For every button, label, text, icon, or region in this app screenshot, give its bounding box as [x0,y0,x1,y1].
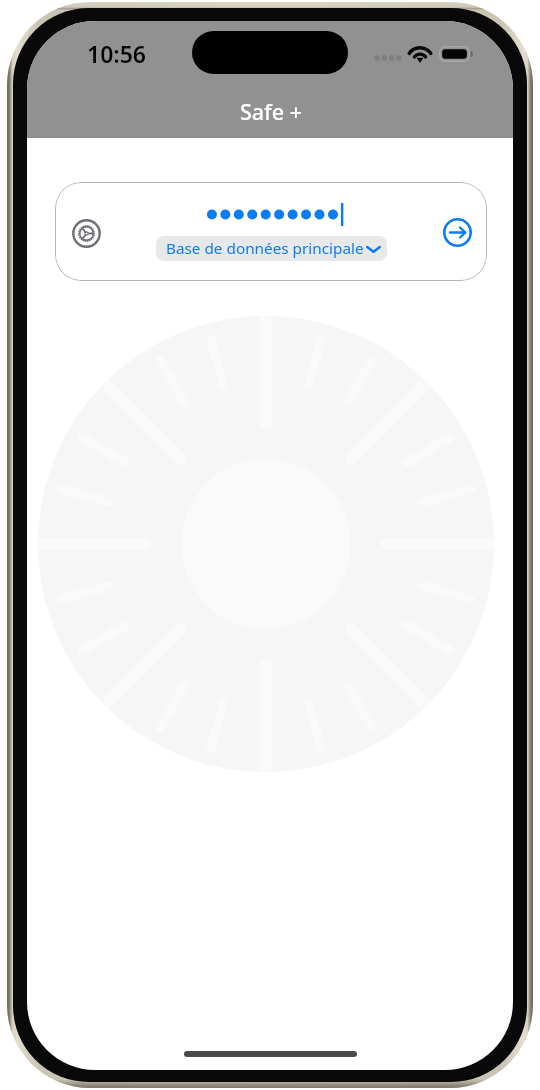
staticText: Safe + [240,97,303,126]
staticText: 10:56 [87,38,146,69]
button[interactable]: Unlock [439,214,475,250]
button[interactable]: Base de données principale [156,236,387,261]
button[interactable]: Settings [68,215,104,251]
staticText: Base de données principale [166,238,364,259]
